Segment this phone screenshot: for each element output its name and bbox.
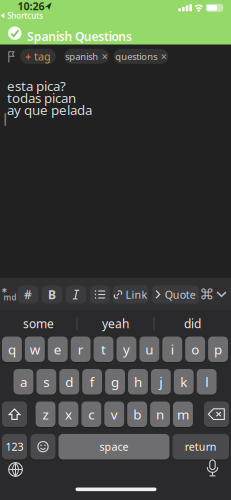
button[interactable]: o [185, 336, 205, 362]
button[interactable]: e [48, 336, 68, 362]
staticText: l [205, 373, 208, 391]
staticText: b [133, 405, 141, 423]
button[interactable]: Next keyboard [8, 462, 23, 477]
staticText: s [43, 373, 49, 391]
button[interactable]: did [157, 311, 227, 335]
button[interactable]: Add tag [20, 49, 56, 64]
button[interactable]: k [174, 369, 194, 394]
button[interactable]: Bulleted list [90, 285, 110, 303]
button[interactable]: Shift [2, 401, 27, 427]
staticText: space [99, 440, 128, 454]
button[interactable]: i [162, 336, 182, 362]
button[interactable]: Dismiss keyboard [216, 291, 226, 297]
staticText: esta pica? [7, 77, 66, 95]
staticText: n [156, 405, 164, 423]
button[interactable]: yeah [80, 311, 150, 335]
button[interactable]: l [197, 369, 217, 394]
button[interactable]: Markdown [2, 288, 16, 301]
staticText: m [177, 405, 189, 423]
button[interactable]: m [173, 401, 193, 427]
staticText: r [78, 340, 84, 358]
button[interactable]: q [2, 336, 22, 362]
button[interactable]: n [150, 401, 170, 427]
staticText: ✱ [1, 287, 7, 294]
staticText: B [48, 286, 56, 302]
staticText: + tag [25, 49, 51, 63]
button[interactable]: t [94, 336, 113, 362]
button[interactable]: Dictate [206, 460, 219, 478]
button[interactable]: Remove tag questions [114, 49, 168, 64]
button[interactable]: j [151, 369, 171, 394]
staticText: t [101, 340, 106, 358]
button[interactable]: Keyboard shortcuts [199, 285, 215, 303]
staticText: did [184, 315, 201, 331]
staticText: g [111, 373, 119, 391]
staticText: w [30, 340, 40, 358]
button[interactable]: r [71, 336, 91, 362]
staticText: c [88, 405, 94, 423]
staticText: o [191, 340, 199, 358]
staticText: e [54, 340, 62, 358]
staticText: # [24, 286, 32, 302]
staticText: h [134, 373, 142, 391]
button[interactable]: Italic [66, 285, 86, 303]
button[interactable]: Insert link [113, 285, 148, 303]
staticText: y [123, 340, 130, 358]
staticText: Shortcuts [7, 10, 43, 21]
staticText: md [3, 292, 16, 303]
button[interactable]: Delete [204, 401, 229, 427]
button[interactable]: s [36, 369, 56, 394]
button[interactable]: Remove tag spanish [64, 49, 109, 64]
button[interactable]: Numbers [2, 434, 27, 459]
button[interactable]: w [25, 336, 45, 362]
staticText: spanish [65, 50, 98, 62]
button[interactable]: Quote [152, 285, 199, 303]
staticText: Spanish Questions [27, 28, 132, 44]
button[interactable]: u [139, 336, 159, 362]
button[interactable]: Heading [18, 285, 38, 303]
staticText: questions [115, 50, 157, 62]
button[interactable]: Bold [42, 285, 62, 303]
staticText: × [161, 49, 167, 63]
staticText: Link [125, 287, 147, 302]
button[interactable]: h [128, 369, 148, 394]
button[interactable]: c [81, 401, 101, 427]
button[interactable]: x [58, 401, 78, 427]
staticText: q [8, 340, 16, 358]
staticText: k [180, 373, 187, 391]
button[interactable]: space [58, 434, 169, 459]
staticText: ⌘ [199, 286, 214, 303]
staticText: a [20, 373, 27, 391]
button[interactable]: some [3, 311, 73, 335]
button[interactable]: d [59, 369, 79, 394]
staticText: z [42, 405, 48, 423]
button[interactable]: return [172, 434, 229, 459]
staticText: some [23, 315, 54, 331]
staticText: × [102, 49, 108, 63]
button[interactable]: y [116, 336, 136, 362]
button[interactable]: g [105, 369, 125, 394]
staticText: 123 [5, 440, 23, 454]
staticText: x [65, 405, 72, 423]
staticText: todas pican [7, 89, 76, 107]
staticText: 10:26 [17, 0, 44, 13]
button[interactable]: b [127, 401, 147, 427]
button[interactable]: z [36, 401, 55, 427]
button[interactable]: a [13, 369, 33, 394]
staticText: yeah [102, 315, 129, 331]
staticText: Quote [165, 287, 196, 302]
button[interactable]: p [208, 336, 228, 362]
staticText: p [214, 340, 222, 358]
button[interactable]: f [82, 369, 102, 394]
staticText: ay que pelada [7, 101, 92, 119]
button[interactable]: Back to Shortcuts [0, 10, 43, 21]
staticText: f [90, 373, 95, 391]
button[interactable]: Emoji [30, 434, 55, 459]
staticText: i [171, 340, 174, 358]
button[interactable]: v [104, 401, 124, 427]
staticText: v [111, 405, 118, 423]
staticText: u [145, 340, 153, 358]
staticText: return [185, 440, 217, 454]
staticText: j [159, 373, 162, 391]
staticText: d [65, 373, 73, 391]
